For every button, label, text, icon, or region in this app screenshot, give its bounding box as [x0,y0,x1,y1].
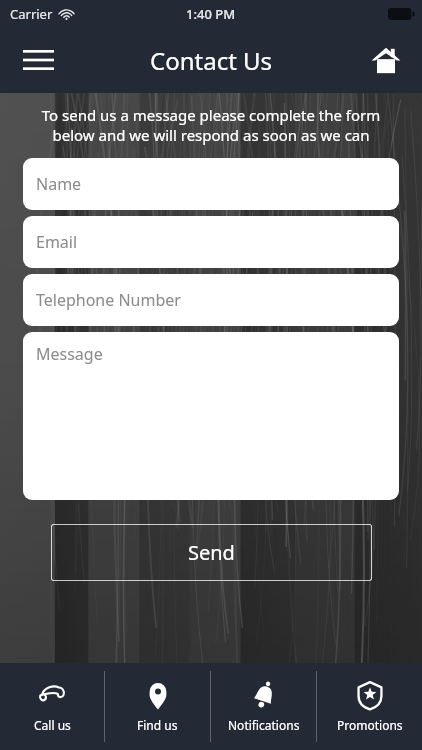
button[interactable]: Menu [14,36,62,84]
button[interactable]: Home [362,36,410,84]
button[interactable]: Send [51,524,372,581]
button[interactable]: Call us [0,663,104,750]
button[interactable]: Find us [105,663,210,750]
staticText: 1:40 PM [186,5,236,23]
button[interactable]: Notifications [211,663,316,750]
staticText: Find us [137,717,178,733]
staticText: Promotions [337,717,403,733]
staticText: Notifications [228,717,300,733]
staticText: Name [36,173,82,195]
staticText: Message [36,343,103,365]
staticText: To send us a message please complete the… [23,105,399,145]
button[interactable]: Promotions [317,663,422,750]
button[interactable]: Name [23,158,399,210]
staticText: Send [188,539,235,566]
staticText: Carrier [10,5,53,23]
button[interactable]: Email [23,216,399,268]
staticText: Contact Us [150,44,273,77]
staticText: Email [36,231,78,253]
button[interactable]: Telephone Number [23,274,399,326]
button[interactable]: Message [23,332,399,500]
staticText: Call us [34,717,71,733]
staticText: Telephone Number [36,289,181,311]
